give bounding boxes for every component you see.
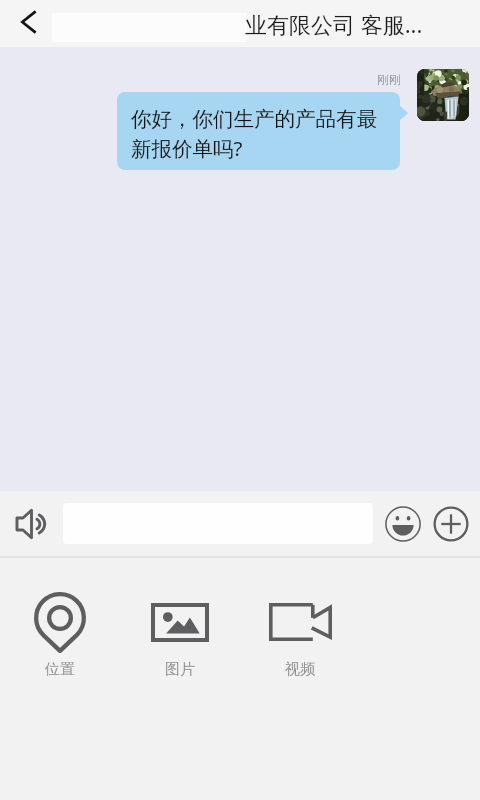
button[interactable]: Back [9, 2, 49, 42]
staticText: 位置 [45, 660, 75, 679]
button[interactable]: 你好，你们生产的产品有最新报价单吗? [117, 92, 408, 170]
button[interactable]: 图片 [120, 590, 240, 679]
button[interactable]: Voice [10, 503, 52, 545]
staticText: 视频 [285, 660, 315, 679]
staticText: 业有限公司 客服... [245, 9, 423, 39]
staticText: 你好，你们生产的产品有最新报价单吗? [131, 106, 386, 162]
button[interactable]: More [432, 505, 470, 543]
button[interactable]: 位置 [0, 590, 120, 679]
button[interactable]: 视频 [240, 590, 360, 679]
button[interactable]: Avatar [417, 69, 469, 121]
button[interactable]: Emoji [384, 505, 422, 543]
staticText: 图片 [165, 660, 195, 679]
staticText: 刚刚 [377, 72, 401, 87]
